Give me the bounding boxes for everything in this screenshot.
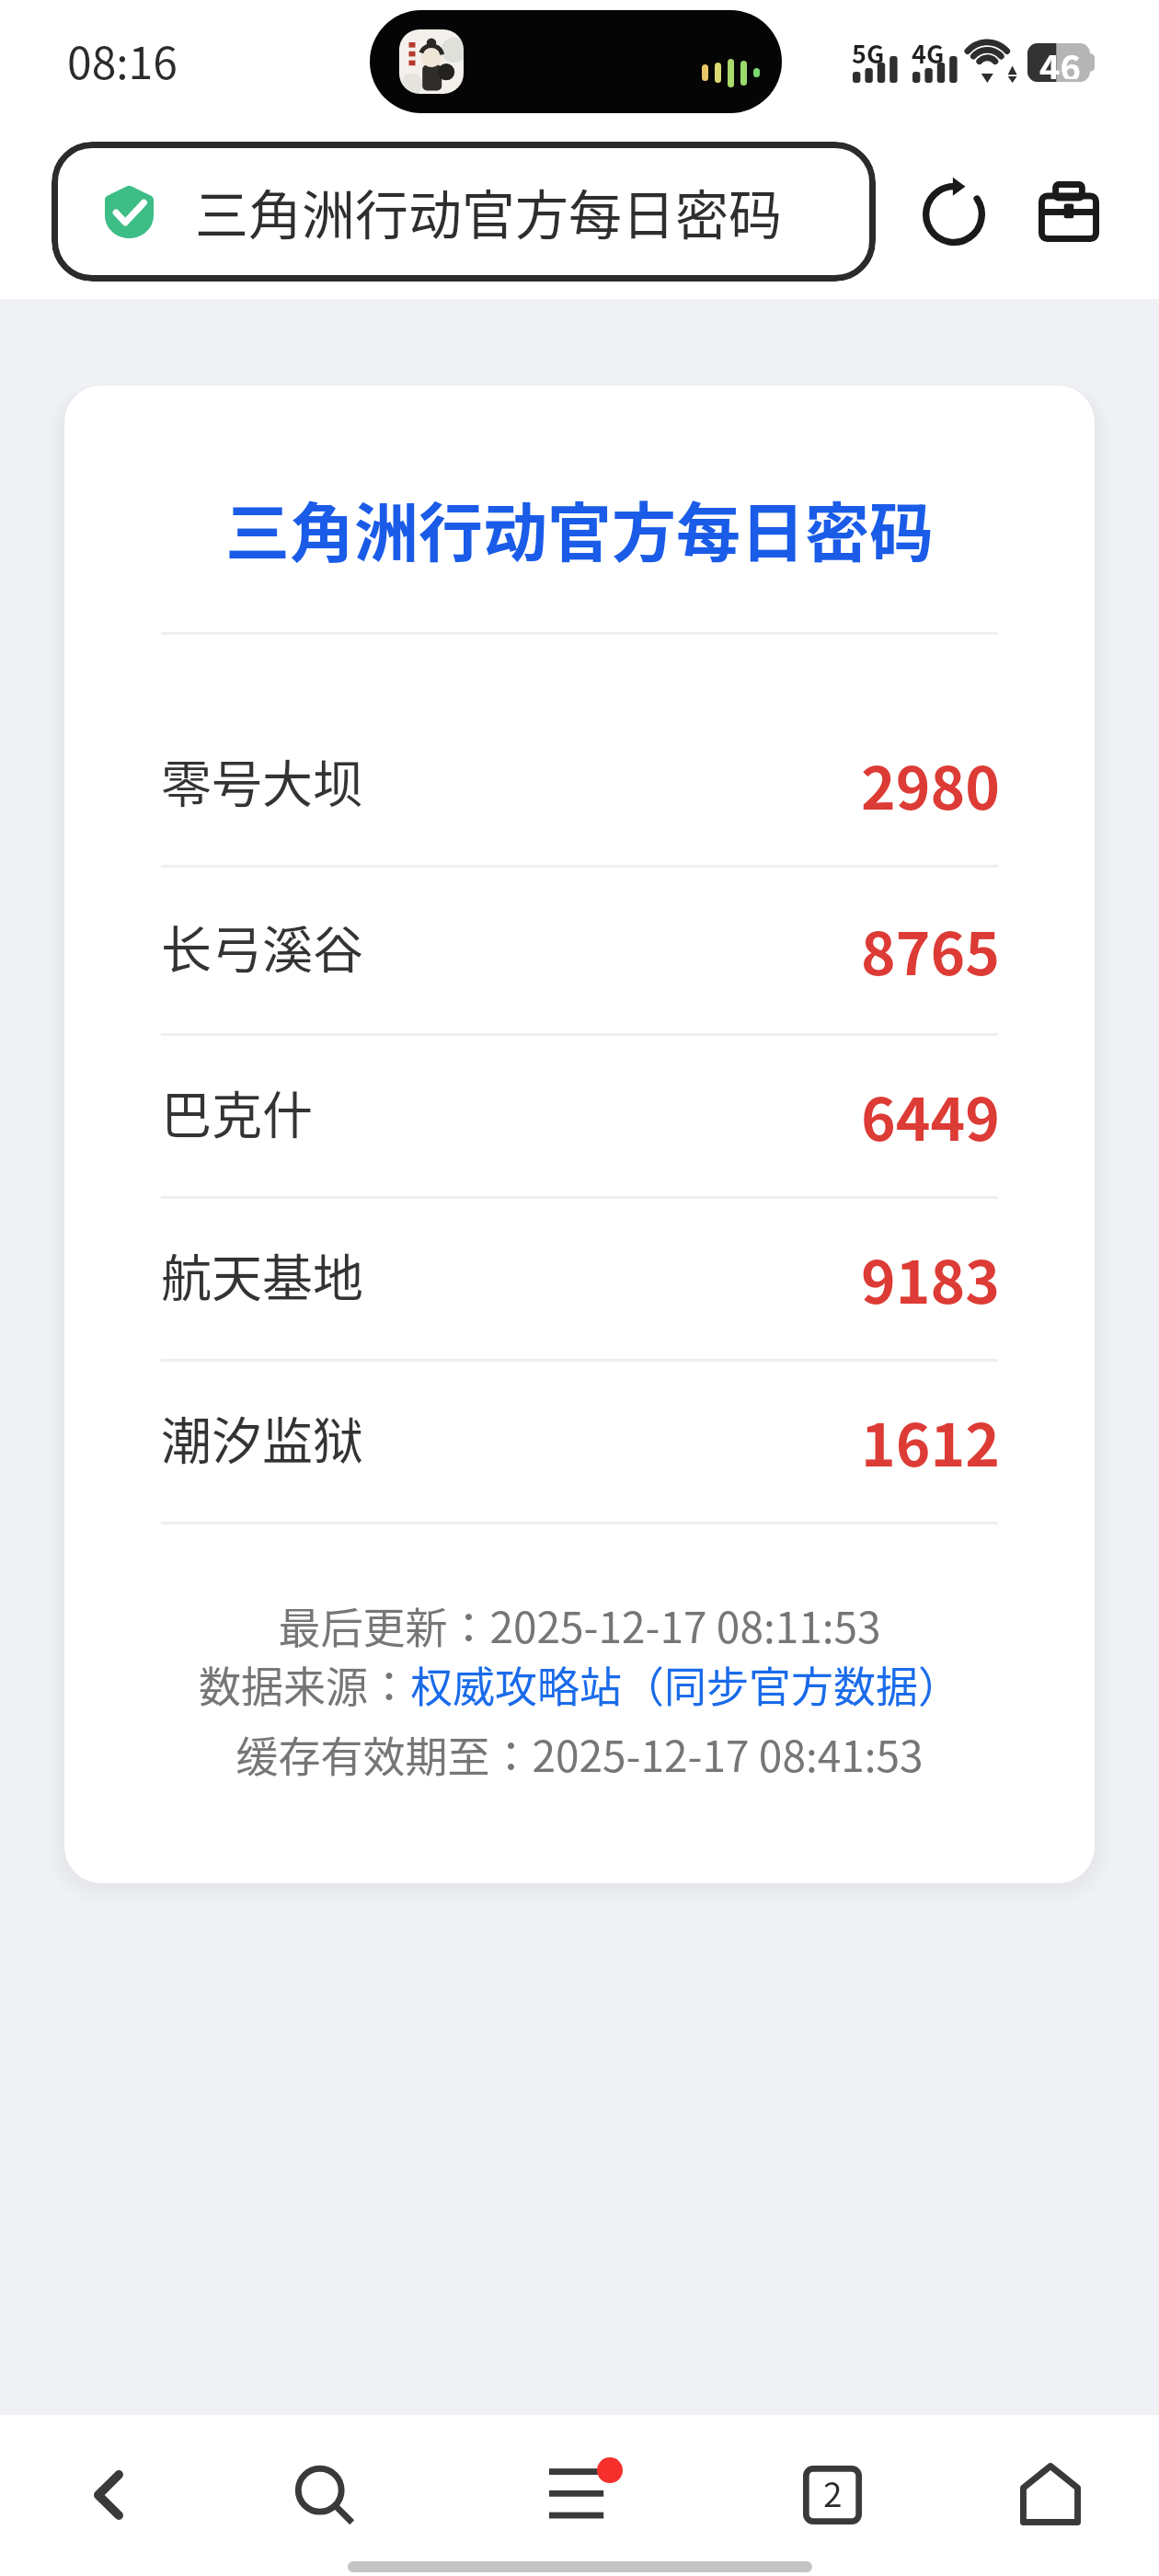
button[interactable]: Tools: [1021, 156, 1117, 267]
staticText: 三角洲行动官方每日密码: [195, 173, 783, 250]
button[interactable]: Home: [993, 2437, 1107, 2551]
button[interactable]: Search: [268, 2438, 382, 2552]
button[interactable]: 巴克什: [161, 1036, 998, 1196]
staticText: 4G: [912, 35, 945, 71]
staticText: 数据来源：: [199, 1653, 410, 1715]
staticText: 最后更新：2025-12-17 08:11:53: [64, 1594, 1095, 1656]
staticText: 长弓溪谷: [161, 909, 364, 983]
staticText: 08:16: [67, 28, 178, 92]
staticText: 零号大坝: [161, 743, 364, 817]
staticText: 5G: [852, 35, 885, 71]
button[interactable]: 潮汐监狱: [161, 1362, 998, 1522]
staticText: 航天基地: [161, 1237, 364, 1311]
button[interactable]: Tabs: [775, 2438, 889, 2552]
staticText: 三角洲行动官方每日密码: [64, 482, 1095, 575]
button[interactable]: 零号大坝: [161, 705, 998, 865]
button[interactable]: Back: [52, 2438, 166, 2552]
button[interactable]: Menu: [529, 2432, 643, 2547]
staticText: 潮汐监狱: [161, 1400, 364, 1474]
button[interactable]: 三角洲行动官方每日密码: [52, 142, 876, 282]
staticText: 1612: [861, 1398, 1001, 1484]
button[interactable]: Refresh: [906, 156, 1002, 267]
staticText: 2: [823, 2467, 843, 2517]
staticText: 9183: [861, 1236, 1001, 1321]
staticText: 缓存有效期至：2025-12-17 08:41:53: [64, 1723, 1095, 1785]
staticText: 巴克什: [161, 1075, 314, 1148]
button[interactable]: 航天基地: [161, 1199, 998, 1359]
staticText: 8765: [861, 907, 1001, 993]
staticText: 6449: [861, 1073, 1001, 1158]
staticText: 2980: [861, 742, 1001, 827]
staticText: 46: [1039, 40, 1081, 79]
button[interactable]: 权威攻略站（同步官方数据）: [410, 1653, 960, 1715]
button[interactable]: 长弓溪谷: [161, 868, 998, 1033]
